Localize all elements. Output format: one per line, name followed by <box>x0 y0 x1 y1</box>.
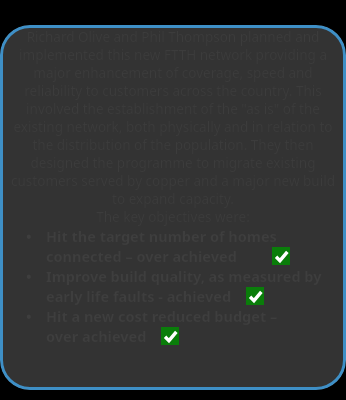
staticText: connected – over achieved <box>46 246 237 266</box>
staticText: • <box>26 226 32 246</box>
staticText: Hit a new cost reduced budget – <box>46 306 278 326</box>
button[interactable]: • <box>11 306 335 346</box>
button[interactable]: Achieved <box>272 247 290 265</box>
staticText: • <box>26 266 32 286</box>
staticText: over achieved <box>46 326 147 346</box>
button[interactable]: • <box>11 226 335 266</box>
button[interactable]: Achieved <box>161 327 179 345</box>
staticText: Richard Olive and Phil Thompson planned … <box>11 28 335 46</box>
staticText: Improve build quality, as measured by <box>46 266 322 286</box>
button[interactable]: Richard Olive and Phil Thompson planned … <box>0 25 346 390</box>
staticText: • <box>26 306 32 326</box>
staticText: Hit the target number of homes <box>46 226 277 246</box>
staticText: early life faults - achieved <box>46 286 232 306</box>
button[interactable]: • <box>11 266 335 306</box>
button[interactable]: Achieved <box>246 287 264 305</box>
